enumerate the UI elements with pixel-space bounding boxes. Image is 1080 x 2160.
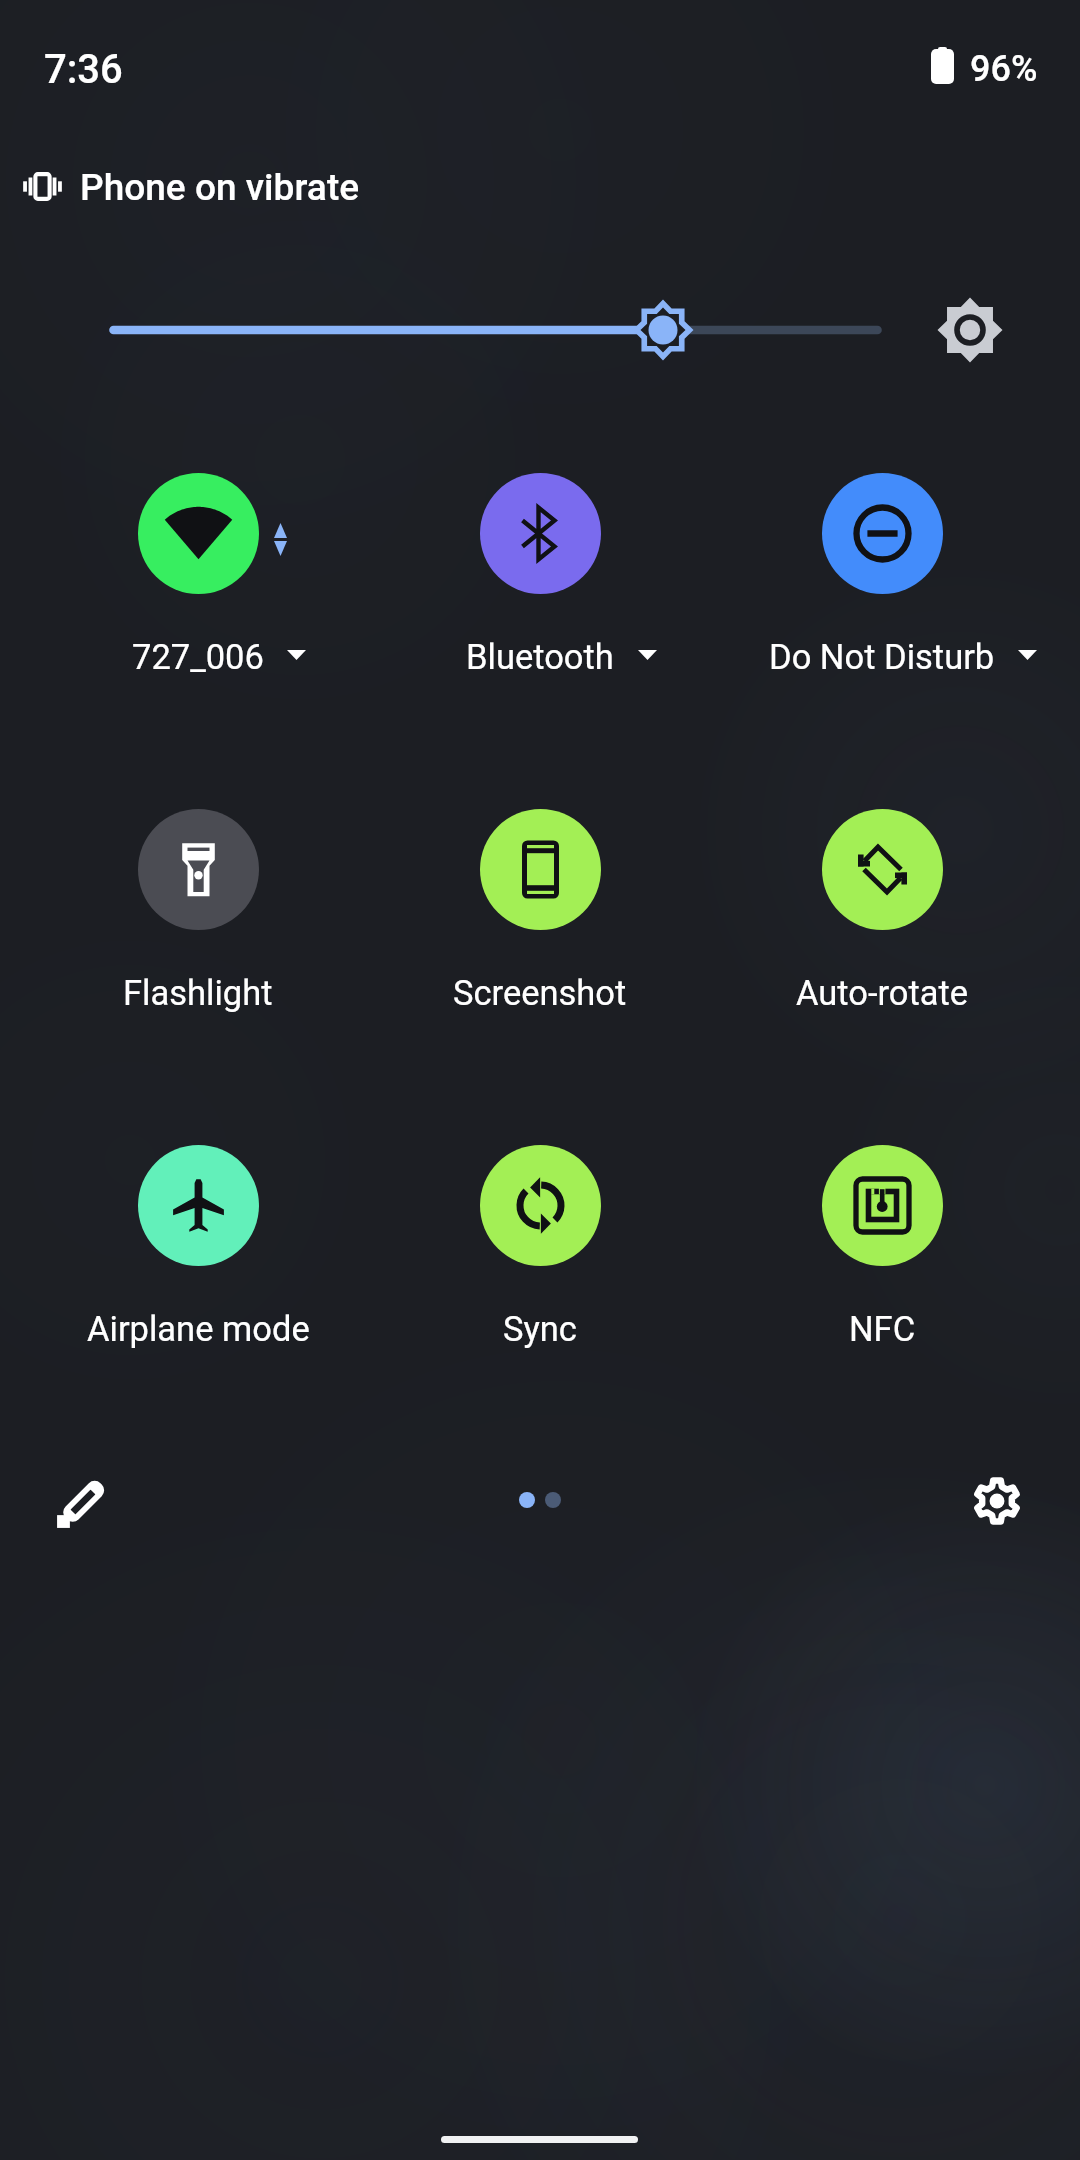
button[interactable]: Do Not Disturb [822, 473, 943, 594]
staticText: 727_006 [132, 637, 264, 677]
button[interactable]: Bluetooth [480, 473, 601, 594]
button[interactable]: Flashlight [138, 809, 259, 930]
button[interactable]: Flashlight [0, 962, 438, 1024]
staticText: Flashlight [123, 973, 273, 1013]
staticText: Auto-rotate [796, 973, 969, 1013]
button[interactable]: 727_006 [0, 626, 438, 688]
staticText: Airplane mode [87, 1309, 310, 1349]
button[interactable]: Screenshot [480, 809, 601, 930]
button[interactable]: Airplane mode [138, 1145, 259, 1266]
staticText: 7:36 [44, 46, 123, 93]
button[interactable]: Auto brightness [915, 280, 1025, 380]
button[interactable]: Auto-rotate [642, 962, 1080, 1024]
staticText: Screenshot [453, 973, 627, 1013]
button[interactable]: Edit tiles [33, 1452, 133, 1552]
button[interactable]: Sync [480, 1145, 601, 1266]
staticText: Do Not Disturb [769, 637, 995, 677]
button[interactable]: Settings [947, 1451, 1047, 1551]
button[interactable]: Auto-rotate [822, 809, 943, 930]
staticText: NFC [849, 1309, 916, 1349]
button[interactable]: 727_006 [138, 473, 259, 594]
button[interactable]: Screenshot [300, 962, 780, 1024]
button[interactable]: Airplane mode [0, 1298, 438, 1360]
button[interactable]: NFC [642, 1298, 1080, 1360]
button[interactable]: NFC [822, 1145, 943, 1266]
staticText: 96% [970, 48, 1038, 90]
staticText: Bluetooth [466, 637, 614, 677]
button[interactable]: Bluetooth [300, 626, 780, 688]
button[interactable]: Sync [300, 1298, 780, 1360]
staticText: Phone on vibrate [80, 166, 360, 209]
button[interactable]: Do Not Disturb [642, 626, 1080, 688]
staticText: Sync [503, 1309, 577, 1349]
